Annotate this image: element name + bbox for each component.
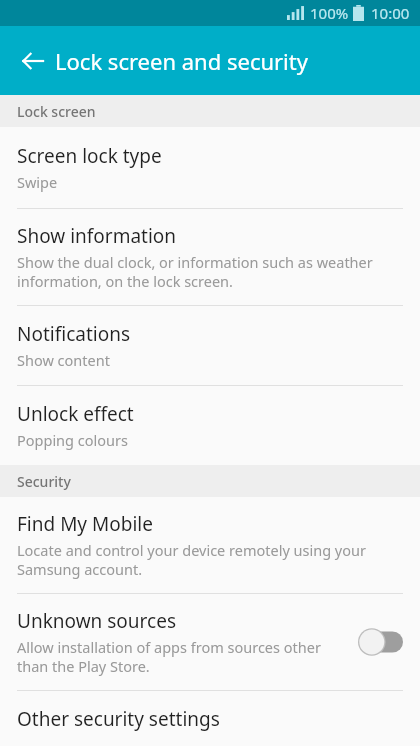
staticText: Allow installation of apps from sources … <box>17 637 321 676</box>
staticText: Other security settings <box>17 706 220 731</box>
staticText: Unknown sources <box>17 608 176 634</box>
staticText: Show the dual clock, or information such… <box>17 252 373 291</box>
button[interactable]: Screen lock type <box>0 127 420 208</box>
staticText: 100% <box>310 3 349 23</box>
staticText: Unlock effect <box>17 401 134 427</box>
button[interactable]: Notifications <box>0 306 420 385</box>
button[interactable]: Unlock effect <box>0 386 420 465</box>
button[interactable]: Unknown sources <box>0 594 420 690</box>
staticText: Locate and control your device remotely … <box>17 540 366 579</box>
staticText: Show content <box>17 350 110 370</box>
staticText: Popping colours <box>17 430 128 450</box>
button[interactable]: Show information <box>0 209 420 305</box>
staticText: Swipe <box>17 172 58 192</box>
staticText: Security <box>17 472 71 491</box>
button[interactable]: Back <box>10 38 56 84</box>
staticText: Lock screen and security <box>55 46 308 76</box>
staticText: Show information <box>17 223 177 249</box>
staticText: Lock screen <box>17 102 96 121</box>
staticText: Screen lock type <box>17 143 162 169</box>
staticText: Find My Mobile <box>17 511 153 537</box>
staticText: 10:00 <box>371 3 410 23</box>
button[interactable]: Other security settings <box>0 691 420 746</box>
button[interactable]: Unknown sources toggle <box>357 627 403 657</box>
staticText: Notifications <box>17 321 131 347</box>
button[interactable]: Find My Mobile <box>0 497 420 593</box>
